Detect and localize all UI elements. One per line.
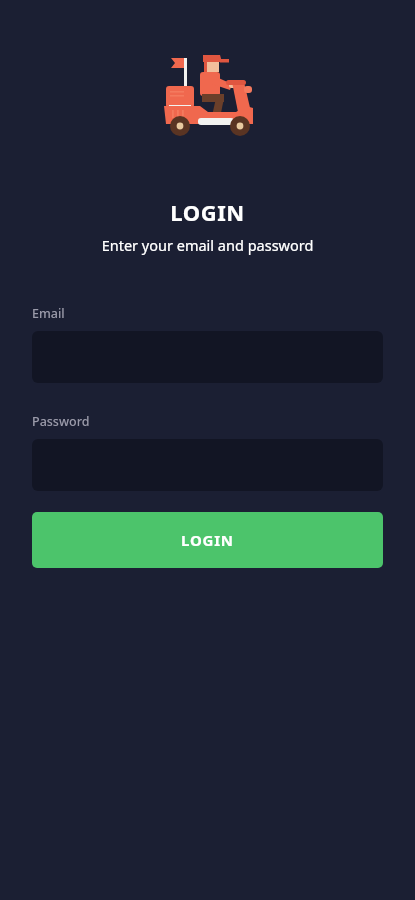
button[interactable]: LOGIN [32,512,383,568]
other: Delivery scooter illustration [158,50,258,142]
staticText: Email [32,305,65,322]
staticText: Enter your email and password [0,235,415,255]
staticText: Password [32,413,90,430]
staticText: LOGIN [181,530,234,550]
staticText: LOGIN [0,197,415,227]
